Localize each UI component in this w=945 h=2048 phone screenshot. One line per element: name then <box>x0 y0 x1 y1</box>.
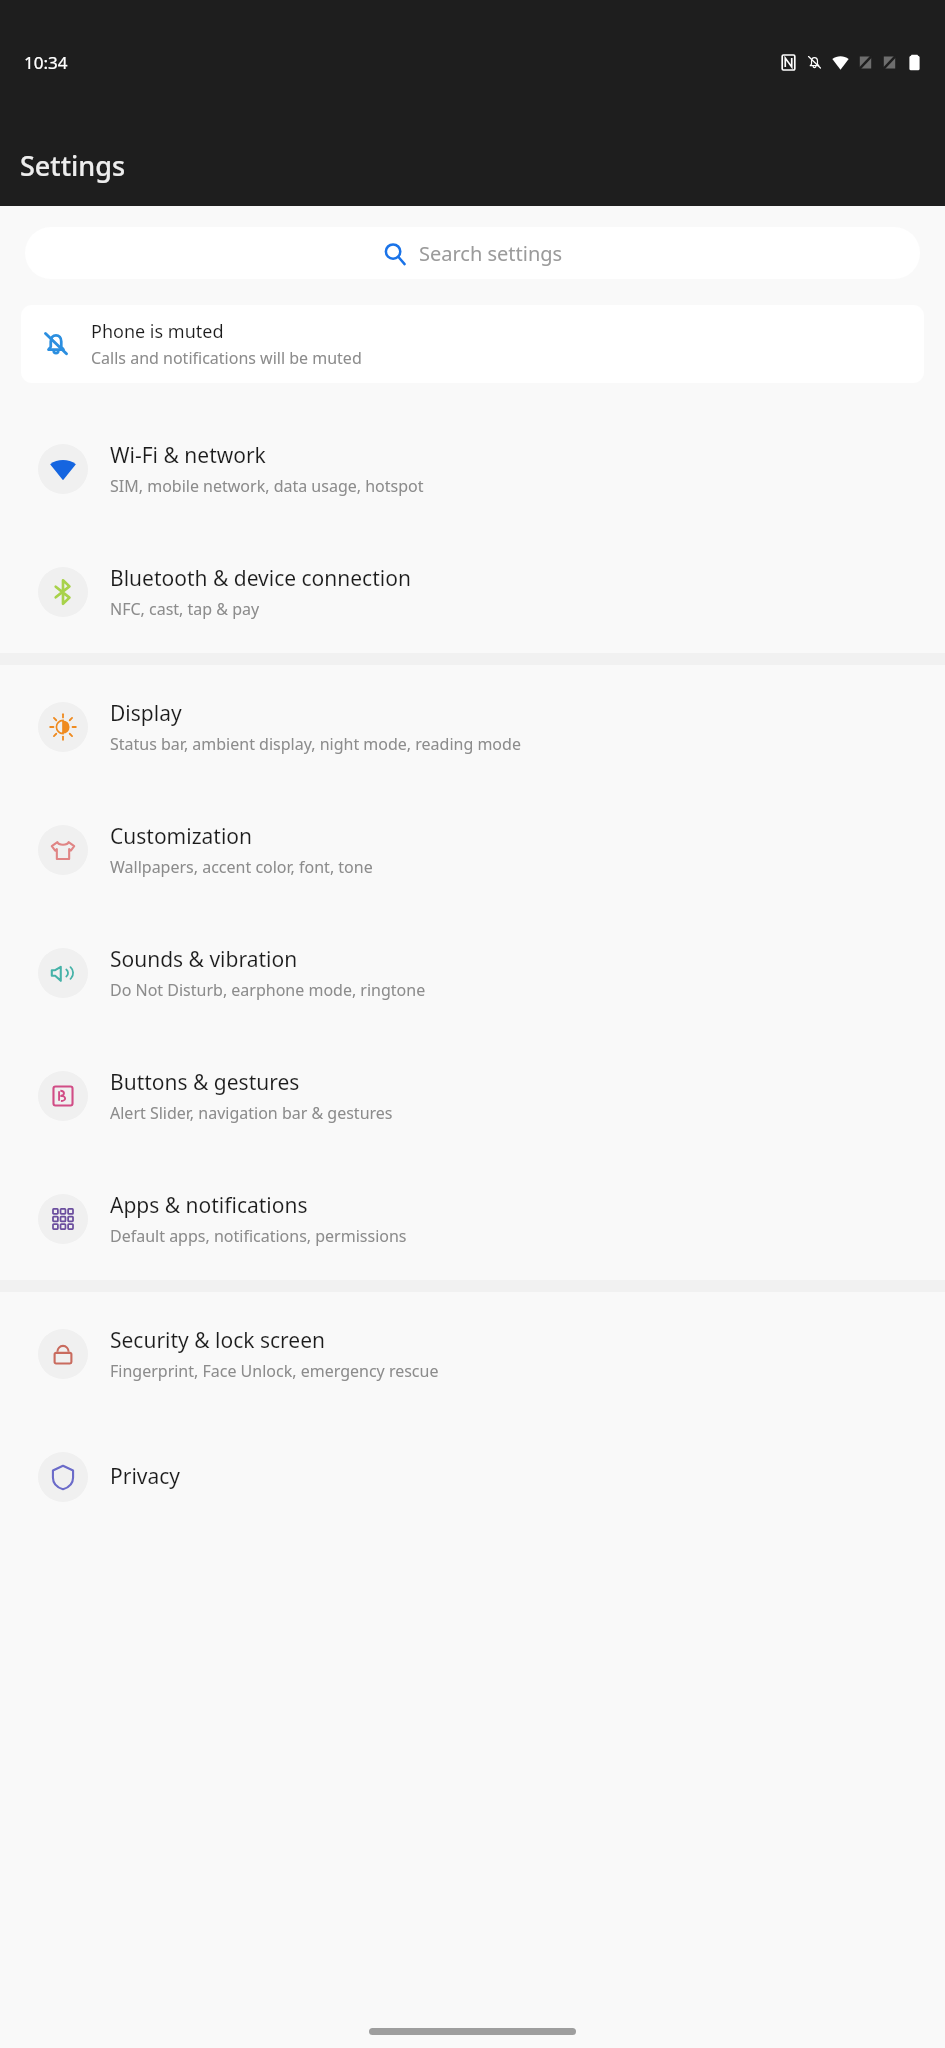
staticText: Fingerprint, Face Unlock, emergency resc… <box>110 1360 439 1382</box>
staticText: NFC, cast, tap & pay <box>110 598 260 620</box>
staticText: Sounds & vibration <box>110 945 298 974</box>
button[interactable]: Customization <box>0 788 945 911</box>
button[interactable]: Wi-Fi & network <box>0 407 945 530</box>
button[interactable]: Bluetooth & device connection <box>0 530 945 653</box>
staticText: Calls and notifications will be muted <box>91 347 362 369</box>
staticText: Wi-Fi & network <box>110 441 266 470</box>
staticText: Display <box>110 699 182 728</box>
button[interactable]: Phone is muted <box>21 305 924 383</box>
staticText: Wallpapers, accent color, font, tone <box>110 856 373 878</box>
button[interactable]: Security & lock screen <box>0 1292 945 1415</box>
staticText: Bluetooth & device connection <box>110 564 411 593</box>
staticText: Customization <box>110 822 252 851</box>
button[interactable]: Sounds & vibration <box>0 911 945 1034</box>
staticText: Buttons & gestures <box>110 1068 300 1097</box>
staticText: Apps & notifications <box>110 1191 308 1220</box>
staticText: Status bar, ambient display, night mode,… <box>110 733 521 755</box>
staticText: Privacy <box>110 1462 181 1491</box>
button[interactable]: Apps & notifications <box>0 1157 945 1280</box>
staticText: Search settings <box>419 240 563 267</box>
button[interactable]: Display <box>0 665 945 788</box>
staticText: 10:34 <box>24 51 68 74</box>
staticText: Alert Slider, navigation bar & gestures <box>110 1102 393 1124</box>
staticText: Security & lock screen <box>110 1326 326 1355</box>
staticText: SIM, mobile network, data usage, hotspot <box>110 475 424 497</box>
staticText: Do Not Disturb, earphone mode, ringtone <box>110 979 426 1001</box>
button[interactable]: Privacy <box>0 1415 945 1538</box>
staticText: Settings <box>20 147 126 184</box>
button[interactable]: Search settings <box>25 227 920 279</box>
button[interactable]: Buttons & gestures <box>0 1034 945 1157</box>
staticText: Default apps, notifications, permissions <box>110 1225 407 1247</box>
staticText: Phone is muted <box>91 319 224 344</box>
